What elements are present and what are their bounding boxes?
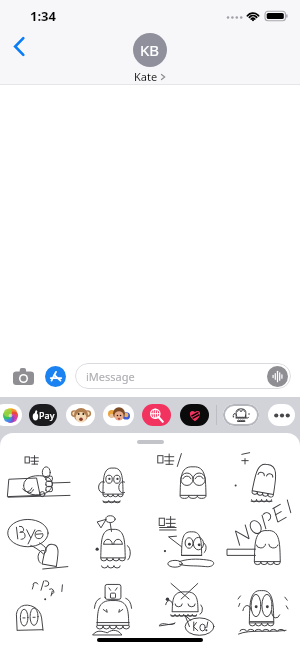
button[interactable]: Sticker [75,575,150,640]
button[interactable]: Sticker [0,445,75,510]
button[interactable]: Sticker [150,575,225,640]
button[interactable]: Animoji [66,404,95,426]
button[interactable]: Sticker [225,510,300,575]
button[interactable]: Sticker [75,510,150,575]
button[interactable]: Sticker [75,445,150,510]
button[interactable]: Camera [11,364,35,388]
button[interactable]: Sticker [150,445,225,510]
button[interactable]: Record audio [267,366,288,387]
button[interactable]: Photos [0,404,22,426]
button[interactable]: Apple Pay [29,404,57,426]
button[interactable]: Ghost stickers [223,404,259,426]
staticText: KB [140,40,160,60]
button[interactable]: KB [133,33,167,84]
button[interactable]: Sticker [0,510,75,575]
staticText: iMessage [86,369,135,384]
staticText: Pay [39,409,55,421]
button[interactable]: Memoji [103,404,134,426]
button[interactable]: Sticker [225,445,300,510]
staticText: 1:34 [30,7,56,25]
button[interactable]: Back [5,32,33,60]
button[interactable]: Sticker [225,575,300,640]
button[interactable]: iMessage [75,363,291,389]
button[interactable]: Sticker [0,575,75,640]
button[interactable]: Sticker [150,510,225,575]
button[interactable]: App Store [45,366,66,387]
button[interactable]: More apps [268,404,295,426]
staticText: Kate [134,69,158,84]
button[interactable]: Digital Touch [180,404,209,426]
button[interactable]: Images [142,404,171,426]
